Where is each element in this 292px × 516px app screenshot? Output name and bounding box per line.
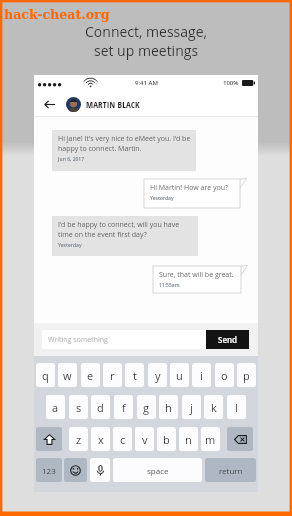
staticText: hack-cheat.org — [4, 7, 110, 22]
staticText: d — [97, 400, 104, 415]
button[interactable]: Sure, that will be great. — [153, 266, 241, 293]
staticText: b — [163, 432, 170, 447]
button[interactable]: c — [113, 427, 132, 451]
staticText: Hi Martin! How are you? — [150, 183, 228, 193]
button[interactable]: Hi Jane! It's very nice to eMeet you. I'… — [52, 130, 196, 171]
staticText: Jun 6, 2017 — [58, 156, 85, 163]
staticText: j — [190, 400, 193, 415]
button[interactable]: o — [215, 363, 234, 387]
staticText: time on the event first day? — [58, 230, 147, 240]
button[interactable]: Back — [41, 94, 57, 114]
button[interactable]: space — [113, 458, 202, 482]
button[interactable]: return — [205, 458, 256, 482]
button[interactable]: p — [237, 363, 256, 387]
staticText: m — [205, 432, 216, 447]
button[interactable]: a — [46, 395, 65, 419]
staticText: x — [98, 432, 104, 447]
button[interactable]: u — [170, 363, 189, 387]
staticText: n — [185, 432, 192, 447]
staticText: Connect, message, — [85, 22, 207, 41]
button[interactable]: x — [91, 427, 110, 451]
button[interactable]: Backspace — [227, 427, 253, 451]
button[interactable]: 123 — [36, 458, 62, 482]
button[interactable]: j — [182, 395, 201, 419]
staticText: y — [155, 368, 161, 383]
staticText: k — [211, 400, 217, 415]
staticText: i — [200, 368, 203, 383]
button[interactable]: n — [179, 427, 198, 451]
staticText: h — [165, 400, 172, 415]
staticText: a — [52, 400, 59, 415]
button[interactable]: i — [192, 363, 211, 387]
button[interactable]: r — [103, 363, 122, 387]
button[interactable]: l — [227, 395, 246, 419]
staticText: 9:41 AM — [135, 79, 158, 87]
button[interactable]: h — [159, 395, 178, 419]
button[interactable]: Shift — [36, 427, 62, 451]
button[interactable]: q — [36, 363, 55, 387]
button[interactable]: I'd be happy to connect, will you have — [52, 216, 198, 256]
staticText: t — [133, 368, 137, 383]
staticText: space — [147, 465, 169, 476]
button[interactable]: Writing something — [42, 330, 206, 349]
staticText: Send — [218, 334, 238, 345]
button[interactable]: Send — [206, 330, 249, 349]
button[interactable]: Hi Martin! How are you? — [144, 179, 240, 208]
staticText: 100% — [223, 79, 239, 87]
button[interactable]: d — [91, 395, 110, 419]
staticText: MARTIN BLACK — [86, 98, 140, 110]
staticText: r — [110, 368, 115, 383]
staticText: z — [76, 432, 82, 447]
staticText: f — [122, 400, 126, 415]
button[interactable]: s — [69, 395, 88, 419]
staticText: e — [87, 368, 94, 383]
staticText: Hi Jane! It's very nice to eMeet you. I'… — [58, 134, 191, 144]
button[interactable]: e — [81, 363, 100, 387]
button[interactable]: y — [148, 363, 167, 387]
staticText: s — [76, 400, 82, 415]
button[interactable]: Emoji — [64, 458, 87, 482]
staticText: u — [176, 368, 183, 383]
button[interactable]: b — [157, 427, 176, 451]
staticText: Yesterday — [150, 195, 174, 202]
button[interactable]: m — [201, 427, 220, 451]
button[interactable]: w — [58, 363, 77, 387]
staticText: c — [120, 432, 126, 447]
staticText: w — [63, 368, 72, 383]
staticText: 123 — [42, 465, 56, 476]
staticText: g — [143, 400, 150, 415]
button[interactable]: v — [135, 427, 154, 451]
button[interactable]: g — [137, 395, 156, 419]
staticText: Yesterday — [58, 242, 82, 249]
staticText: p — [243, 368, 250, 383]
button[interactable]: z — [69, 427, 88, 451]
staticText: I'd be happy to connect, will you have — [58, 220, 180, 230]
staticText: Sure, that will be great. — [159, 270, 234, 280]
staticText: v — [142, 432, 148, 447]
staticText: set up meetings — [94, 41, 199, 60]
staticText: 11:55am — [159, 282, 180, 289]
button[interactable]: f — [114, 395, 133, 419]
button[interactable]: k — [204, 395, 223, 419]
staticText: happy to connect. Martin. — [58, 144, 142, 154]
staticText: l — [235, 400, 238, 415]
staticText: return — [219, 465, 243, 476]
staticText: o — [221, 368, 228, 383]
button[interactable]: t — [125, 363, 144, 387]
staticText: q — [42, 368, 49, 383]
staticText: Writing something — [48, 335, 108, 345]
button[interactable]: Microphone — [90, 458, 110, 482]
